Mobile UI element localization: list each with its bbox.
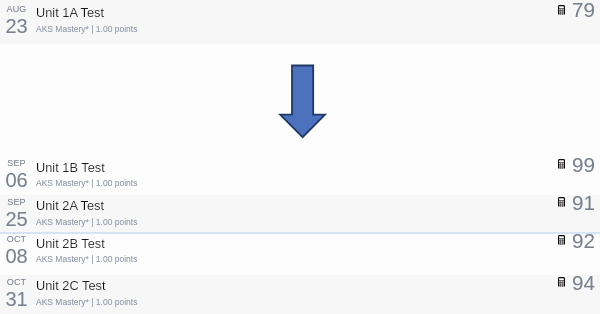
staticText: 23 <box>1 15 32 37</box>
staticText: Unit 2A Test <box>36 198 105 212</box>
staticText: Unit 1B Test <box>36 160 105 174</box>
staticText: AKS Mastery* | 1.00 points <box>36 297 138 306</box>
other: Assignment type <box>558 197 565 207</box>
button[interactable]: OCT <box>0 232 600 274</box>
button[interactable]: SEP <box>0 195 600 233</box>
staticText: 91 <box>570 191 595 214</box>
button[interactable]: AUG <box>0 0 600 44</box>
other: Assignment type <box>558 5 565 15</box>
staticText: SEP <box>1 197 32 207</box>
staticText: Unit 2C Test <box>36 278 106 292</box>
button[interactable]: OCT <box>0 275 600 314</box>
staticText: AUG <box>1 4 32 14</box>
staticText: SEP <box>1 158 32 168</box>
staticText: AKS Mastery* | 1.00 points <box>36 24 138 33</box>
staticText: 06 <box>1 169 32 191</box>
staticText: 25 <box>1 208 32 230</box>
other: Assignment type <box>558 277 565 287</box>
staticText: OCT <box>1 234 32 244</box>
staticText: AKS Mastery* | 1.00 points <box>36 254 138 263</box>
staticText: Unit 1A Test <box>36 5 105 19</box>
staticText: OCT <box>1 277 32 287</box>
staticText: 99 <box>570 153 595 176</box>
other: Assignment type <box>558 235 565 245</box>
staticText: 08 <box>1 245 32 267</box>
other: Assignment type <box>558 159 565 169</box>
staticText: AKS Mastery* | 1.00 points <box>36 178 138 187</box>
staticText: 31 <box>1 288 32 310</box>
staticText: Unit 2B Test <box>36 236 105 250</box>
staticText: 94 <box>570 271 595 294</box>
staticText: AKS Mastery* | 1.00 points <box>36 217 138 226</box>
staticText: 92 <box>570 229 595 252</box>
staticText: 79 <box>570 0 595 21</box>
button[interactable]: SEP <box>0 156 600 194</box>
